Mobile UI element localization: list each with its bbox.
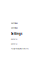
staticText: General xyxy=(11,38,17,40)
staticText: Settings xyxy=(11,22,18,24)
staticText: General xyxy=(11,43,17,45)
staticText: Settings xyxy=(11,27,18,29)
staticText: Settings xyxy=(11,32,22,35)
staticText: Fast, private, always in sync xyxy=(11,48,29,50)
